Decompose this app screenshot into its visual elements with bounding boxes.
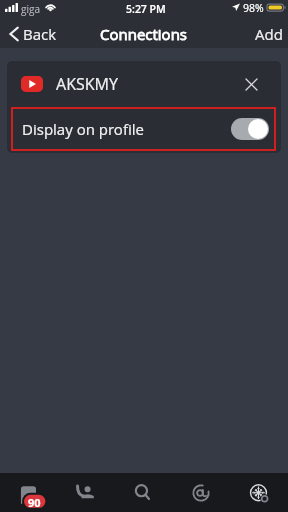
button[interactable]: Messages, 90 unread (0, 473, 57, 512)
staticText: Add (255, 24, 283, 43)
button[interactable]: Back (0, 19, 63, 48)
button[interactable]: Display on profile (11, 107, 276, 151)
staticText: Connections (100, 24, 188, 44)
button[interactable]: Mentions (172, 473, 230, 512)
button[interactable]: Profile (230, 473, 288, 512)
staticText: giga (21, 2, 41, 16)
button[interactable]: AKSKMY (7, 61, 281, 107)
button[interactable]: Friends (57, 473, 114, 512)
staticText: Display on profile (22, 119, 144, 139)
staticText: 90 (28, 495, 41, 508)
staticText: 5:27 PM (126, 2, 166, 16)
staticText: Back (23, 24, 57, 43)
button[interactable]: Remove connection (239, 72, 263, 96)
staticText: AKSKMY (56, 73, 118, 95)
button[interactable]: Search (114, 473, 172, 512)
staticText: 98% (243, 1, 264, 15)
button[interactable]: Add (249, 19, 288, 48)
